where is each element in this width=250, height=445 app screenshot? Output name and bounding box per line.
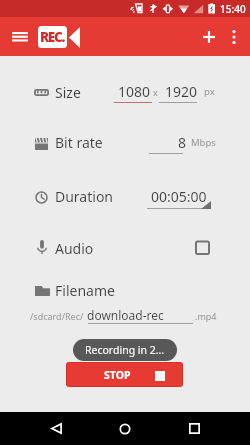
staticText: /sdcard/Rec/ <box>30 310 84 322</box>
staticText: .mp4 <box>195 310 217 322</box>
staticText: x <box>153 86 158 98</box>
staticText: Mbps <box>191 136 216 149</box>
button[interactable]: Recent apps <box>178 412 210 445</box>
button[interactable]: More options <box>223 24 245 49</box>
button[interactable]: Home <box>109 412 141 445</box>
staticText: Audio <box>55 239 94 258</box>
staticText: px <box>204 85 215 98</box>
staticText: 15:40 <box>220 2 246 16</box>
staticText: Recording in 2… <box>85 343 165 357</box>
button[interactable]: Back <box>40 412 72 445</box>
button[interactable]: STOP <box>67 363 182 386</box>
staticText: download-rec <box>87 307 164 323</box>
button[interactable]: Audio checkbox <box>195 241 210 255</box>
staticText: Bit rate <box>55 133 103 152</box>
staticText: 1920 <box>165 82 198 101</box>
staticText: Filename <box>55 281 115 300</box>
staticText: Size <box>55 83 81 102</box>
button[interactable]: Open navigation menu <box>6 24 34 49</box>
staticText: 8 <box>178 133 187 152</box>
button[interactable]: Add <box>196 24 222 49</box>
staticText: Duration <box>55 187 114 206</box>
staticText: REC. <box>40 28 65 46</box>
staticText: 00:05:00 <box>151 187 207 206</box>
staticText: STOP <box>104 368 131 382</box>
staticText: 1080 <box>118 82 151 101</box>
button[interactable] <box>0 66 250 118</box>
